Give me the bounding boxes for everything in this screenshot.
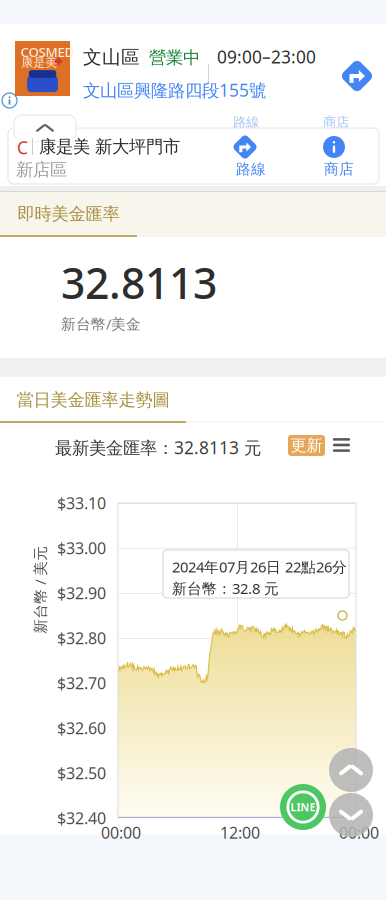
staticText: LINE [290, 800, 315, 814]
button[interactable]: 更新 [288, 435, 325, 456]
button[interactable]: LINE 分享 [280, 784, 326, 830]
staticText: 路線 [233, 114, 259, 130]
staticText: $32.50 [57, 762, 106, 784]
staticText: $32.90 [57, 582, 106, 604]
staticText: 營業中 [149, 47, 200, 68]
button[interactable]: 選單 [333, 437, 350, 453]
staticText: 商店 [324, 160, 354, 178]
staticText: COSMED [20, 43, 74, 61]
staticText: 路線 [236, 160, 266, 178]
button[interactable]: 當日美金匯率走勢圖 [0, 377, 186, 423]
staticText: 即時美金匯率 [17, 203, 119, 225]
staticText: $32.80 [57, 627, 106, 649]
staticText: 32.8113 [61, 254, 217, 311]
button[interactable]: 到底部 [329, 793, 373, 837]
staticText: 2024年07月26日 22點26分 [172, 557, 347, 576]
button[interactable]: 收合 [14, 115, 76, 141]
staticText: 新台幣/美金 [61, 314, 141, 333]
button[interactable]: 即時美金匯率 [0, 191, 137, 237]
staticText: 最新美金匯率：32.8113 元 [55, 436, 261, 459]
button[interactable]: 回到頂端 [329, 748, 373, 792]
staticText: 更新 [290, 436, 322, 455]
staticText: 商店 [323, 114, 349, 130]
staticText: $32.60 [57, 717, 106, 739]
staticText: 12:00 [220, 822, 260, 843]
staticText: $32.40 [57, 807, 106, 829]
staticText: 文山區 [83, 46, 140, 69]
staticText: 新台幣：32.8 元 [172, 578, 279, 598]
staticText: $32.70 [57, 672, 106, 694]
staticText: 00:00 [101, 822, 141, 843]
button[interactable]: COSMED [0, 24, 386, 114]
staticText: $33.00 [57, 537, 106, 559]
staticText: 新台幣 / 美元 [0, 580, 84, 599]
staticText: 康是美 [21, 55, 57, 70]
staticText: 09:00–23:00 [217, 45, 316, 68]
staticText: 當日美金匯率走勢圖 [16, 389, 169, 411]
staticText: 文山區興隆路四段155號 [83, 78, 266, 101]
staticText: C [17, 136, 28, 159]
staticText: 亟 [60, 114, 72, 129]
staticText: 00:00 [339, 822, 379, 843]
staticText: 康是美 新大坪門市 [39, 136, 180, 157]
staticText: $33.10 [57, 492, 106, 514]
staticText: 新店區 [16, 159, 67, 180]
